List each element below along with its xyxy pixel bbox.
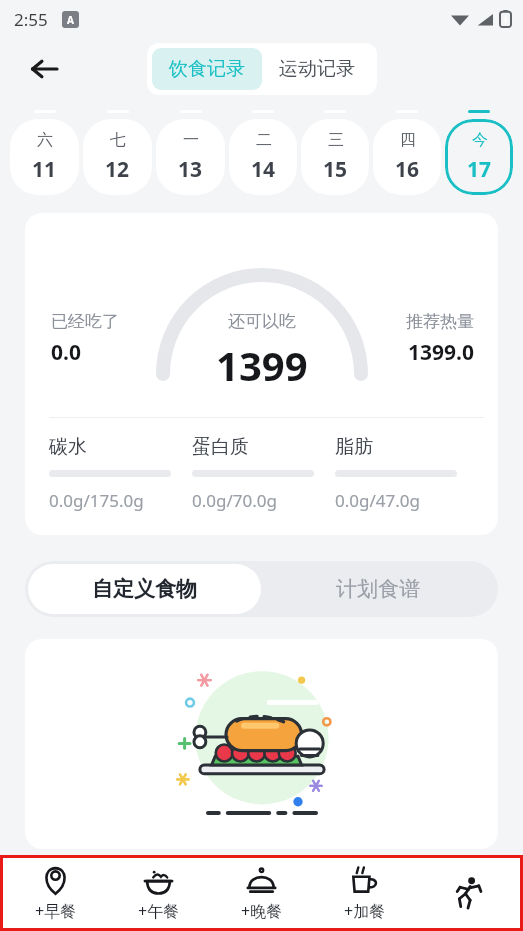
button[interactable]: 还可以吃 (25, 213, 498, 535)
staticText: 0.0g/47.0g (335, 489, 420, 512)
button[interactable]: 七 (83, 119, 152, 195)
staticText: +午餐 (138, 900, 180, 922)
staticText: 今 (472, 130, 488, 150)
button[interactable]: 运动记录 (262, 48, 372, 90)
staticText: 11 (32, 155, 57, 184)
staticText: 自定义食物 (92, 576, 197, 602)
staticText: A (67, 13, 74, 27)
staticText: 0.0g/175.0g (49, 489, 144, 512)
button[interactable]: 今 (445, 119, 513, 195)
staticText: 已经吃了 (51, 311, 119, 332)
staticText: 碳水 (49, 435, 87, 459)
staticText: 14 (251, 155, 276, 184)
staticText: 计划食谱 (336, 576, 420, 602)
staticText: 饮食记录 (169, 57, 245, 81)
staticText: +早餐 (35, 900, 77, 922)
staticText: +晚餐 (241, 900, 283, 922)
staticText: +加餐 (344, 900, 386, 922)
button[interactable]: 饮食记录 (152, 48, 262, 90)
staticText: 二 (256, 130, 272, 150)
staticText: 蛋白质 (192, 435, 249, 459)
staticText: 1399 (216, 338, 308, 392)
button[interactable]: 四 (373, 119, 441, 195)
staticText: 12 (105, 155, 130, 184)
button[interactable]: +早餐 (4, 860, 107, 926)
staticText: 0.0g/70.0g (192, 489, 277, 512)
button[interactable]: +加餐 (313, 860, 416, 926)
staticText: 六 (37, 130, 53, 150)
staticText: 运动记录 (279, 57, 355, 81)
button[interactable]: 六 (10, 119, 79, 195)
button[interactable]: +晚餐 (210, 860, 313, 926)
staticText: 脂肪 (335, 435, 373, 459)
staticText: 一 (183, 130, 199, 150)
button[interactable]: Exercise (416, 860, 519, 926)
staticText: 15 (323, 155, 348, 184)
button[interactable]: +午餐 (107, 860, 210, 926)
staticText: 17 (467, 155, 492, 184)
staticText: 推荐热量 (406, 311, 474, 332)
staticText: 七 (110, 130, 126, 150)
staticText: 2:55 (14, 8, 48, 31)
button[interactable]: 三 (301, 119, 369, 195)
staticText: 13 (178, 155, 203, 184)
staticText: 0.0 (51, 338, 81, 367)
staticText: 16 (395, 155, 420, 184)
button[interactable]: 一 (156, 119, 225, 195)
staticText: 三 (328, 130, 344, 150)
button[interactable]: 计划食谱 (261, 564, 495, 614)
button[interactable]: 二 (229, 119, 297, 195)
button[interactable]: 自定义食物 (28, 564, 261, 614)
staticText: 四 (400, 130, 416, 150)
staticText: 还可以吃 (228, 311, 296, 332)
button[interactable]: Back (22, 47, 66, 91)
staticText: 1399.0 (408, 338, 474, 367)
